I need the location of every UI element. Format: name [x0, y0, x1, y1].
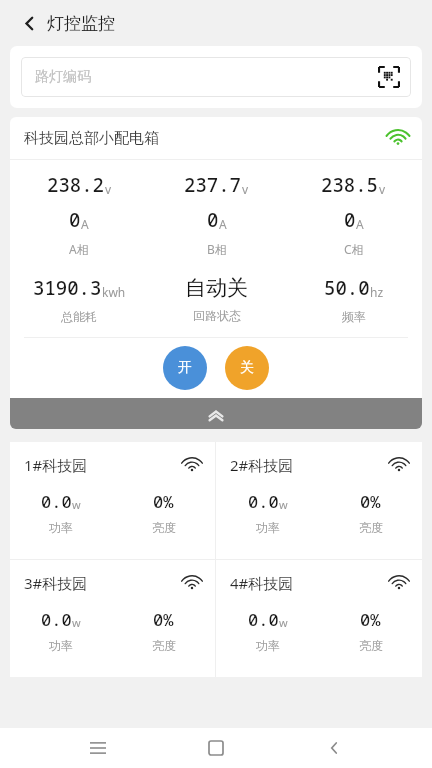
staticText: 亮度	[152, 638, 176, 653]
staticText: 总能耗	[61, 309, 97, 324]
staticText: 0.0	[248, 490, 279, 513]
button[interactable]: Collapse	[10, 398, 422, 429]
staticText: v	[105, 181, 112, 197]
staticText: 灯控监控	[47, 13, 115, 34]
staticText: 0%	[153, 608, 174, 631]
button[interactable]: 4#科技园	[216, 560, 422, 677]
staticText: 237.7	[184, 172, 242, 198]
staticText: w	[72, 497, 81, 512]
button[interactable]: Back	[14, 8, 44, 38]
staticText: 亮度	[359, 638, 383, 653]
staticText: 0	[69, 207, 81, 233]
staticText: hz	[370, 284, 384, 300]
button[interactable]: 关	[225, 346, 269, 390]
staticText: 自动关	[185, 275, 248, 301]
staticText: 3#科技园	[24, 573, 183, 593]
staticText: 功率	[49, 520, 73, 535]
button[interactable]: Home	[196, 728, 236, 768]
button[interactable]: 科技园总部小配电箱	[24, 117, 408, 159]
staticText: 科技园总部小配电箱	[24, 129, 388, 148]
staticText: 0%	[153, 490, 174, 513]
staticText: 亮度	[359, 520, 383, 535]
staticText: w	[279, 497, 288, 512]
button[interactable]: 开	[163, 346, 207, 390]
staticText: v	[379, 181, 386, 197]
staticText: 功率	[256, 638, 280, 653]
staticText: 50.0	[324, 275, 370, 301]
staticText: B相	[207, 241, 227, 257]
staticText: w	[279, 615, 288, 630]
staticText: 路灯编码	[35, 68, 376, 86]
staticText: 0%	[360, 490, 381, 513]
staticText: A	[81, 216, 89, 232]
staticText: 功率	[256, 520, 280, 535]
staticText: 0	[207, 207, 219, 233]
staticText: 0	[344, 207, 356, 233]
staticText: 238.2	[47, 172, 105, 198]
button[interactable]: 路灯编码	[21, 57, 411, 97]
staticText: 3190.3	[33, 275, 102, 301]
staticText: 亮度	[152, 520, 176, 535]
staticText: C相	[344, 241, 364, 257]
staticText: 开	[178, 359, 192, 377]
staticText: A	[356, 216, 364, 232]
staticText: 关	[240, 359, 254, 377]
staticText: 0.0	[41, 490, 72, 513]
staticText: 0.0	[41, 608, 72, 631]
staticText: 功率	[49, 638, 73, 653]
staticText: v	[242, 181, 249, 197]
staticText: 0%	[360, 608, 381, 631]
staticText: 回路状态	[193, 308, 241, 323]
staticText: 2#科技园	[230, 455, 390, 475]
staticText: 0.0	[248, 608, 279, 631]
staticText: 1#科技园	[24, 455, 183, 475]
staticText: w	[72, 615, 81, 630]
button[interactable]: 3#科技园	[10, 560, 215, 677]
button[interactable]: 1#科技园	[10, 442, 215, 559]
staticText: 频率	[342, 309, 366, 324]
staticText: A	[219, 216, 227, 232]
button[interactable]: 2#科技园	[216, 442, 422, 559]
button[interactable]: Scan QR code	[376, 64, 402, 90]
staticText: A相	[69, 241, 89, 257]
staticText: 4#科技园	[230, 573, 390, 593]
staticText: kwh	[102, 284, 126, 300]
button[interactable]: Recent apps	[78, 728, 118, 768]
button[interactable]: Back	[314, 728, 354, 768]
staticText: 238.5	[321, 172, 379, 198]
